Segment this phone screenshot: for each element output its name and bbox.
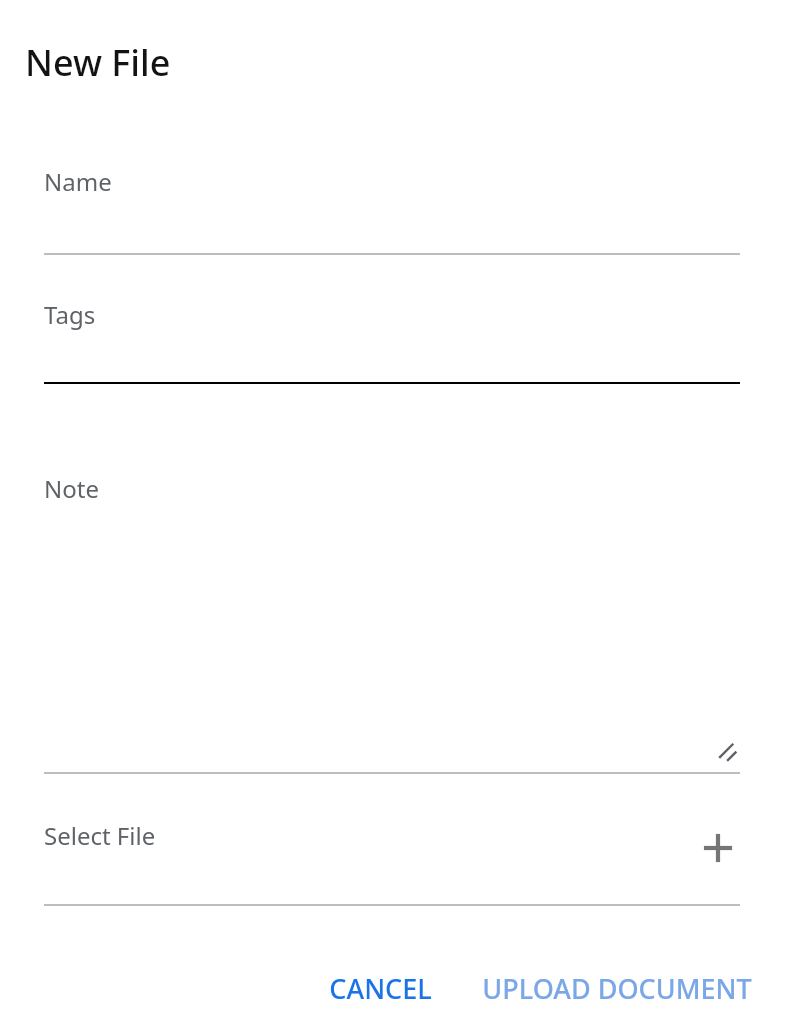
staticText: UPLOAD DOCUMENT (482, 970, 752, 1007)
staticText: New File (25, 38, 171, 87)
button[interactable]: Note (44, 456, 740, 774)
button[interactable]: Name (44, 150, 740, 255)
button[interactable]: Select File (44, 794, 740, 906)
staticText: Note (44, 472, 99, 505)
button[interactable]: Add file (694, 824, 742, 872)
staticText: Select File (44, 819, 156, 852)
staticText: Tags (44, 298, 96, 331)
button[interactable]: CANCEL (315, 958, 446, 1019)
staticText: Name (44, 165, 112, 198)
button[interactable]: UPLOAD DOCUMENT (468, 958, 766, 1019)
staticText: CANCEL (329, 970, 432, 1007)
button[interactable]: Tags (44, 282, 740, 384)
